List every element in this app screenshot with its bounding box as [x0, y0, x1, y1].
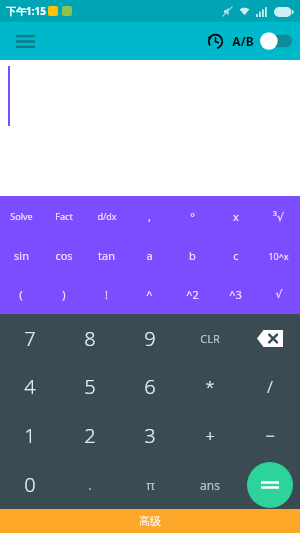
staticText: √: [275, 288, 283, 301]
staticText: tan: [98, 248, 115, 263]
button[interactable]: 1: [0, 411, 60, 460]
staticText: /: [267, 375, 273, 398]
button[interactable]: CLR: [180, 314, 240, 362]
staticText: A/B: [232, 33, 254, 49]
staticText: 3: [144, 422, 156, 449]
staticText: ^2: [186, 287, 199, 302]
staticText: 5: [84, 373, 96, 400]
button[interactable]: ans: [180, 460, 240, 509]
staticText: ,: [148, 209, 151, 224]
button[interactable]: a: [128, 236, 171, 275]
button[interactable]: Menu: [8, 24, 42, 58]
staticText: (: [19, 287, 23, 302]
button[interactable]: 7: [0, 314, 60, 362]
staticText: !: [105, 287, 108, 302]
button[interactable]: +: [180, 411, 240, 460]
staticText: b: [189, 248, 196, 263]
staticText: d/dx: [97, 210, 117, 222]
button[interactable]: −: [240, 411, 300, 460]
button[interactable]: tan: [85, 236, 128, 275]
button[interactable]: 高级: [0, 509, 300, 533]
staticText: −: [265, 424, 275, 447]
staticText: π: [146, 476, 155, 494]
staticText: 8: [84, 325, 96, 352]
button[interactable]: 0: [0, 460, 60, 509]
staticText: 1: [24, 422, 36, 449]
staticText: *: [205, 375, 215, 398]
button[interactable]: π: [120, 460, 180, 509]
button[interactable]: °: [171, 196, 214, 236]
button[interactable]: cos: [42, 236, 85, 275]
staticText: .: [88, 476, 92, 494]
button[interactable]: .: [60, 460, 120, 509]
button[interactable]: ^: [128, 275, 171, 314]
button[interactable]: ): [42, 275, 85, 314]
button[interactable]: 6: [120, 362, 180, 411]
staticText: sin: [14, 248, 29, 263]
button[interactable]: /: [240, 362, 300, 411]
staticText: 9: [144, 325, 156, 352]
staticText: a: [146, 248, 153, 263]
button[interactable]: x: [214, 196, 257, 236]
button[interactable]: History: [202, 28, 228, 54]
button[interactable]: !: [85, 275, 128, 314]
button[interactable]: 4: [0, 362, 60, 411]
staticText: ans: [200, 477, 220, 493]
staticText: ): [62, 287, 66, 302]
button[interactable]: c: [214, 236, 257, 275]
button[interactable]: ,: [128, 196, 171, 236]
staticText: 4: [24, 373, 36, 400]
staticText: x: [233, 209, 239, 224]
staticText: 6: [144, 373, 156, 400]
staticText: 10^x: [268, 250, 289, 262]
staticText: ^: [146, 287, 153, 302]
staticText: ³√: [273, 209, 284, 224]
staticText: ^3: [229, 287, 242, 302]
staticText: 下午1:15: [6, 4, 46, 18]
button[interactable]: ³√: [257, 196, 300, 236]
staticText: CLR: [200, 331, 220, 346]
button[interactable]: 5: [60, 362, 120, 411]
button[interactable]: Fact: [42, 196, 85, 236]
staticText: 7: [24, 325, 36, 352]
button[interactable]: 10^x: [257, 236, 300, 275]
button[interactable]: 2: [60, 411, 120, 460]
staticText: °: [190, 209, 195, 224]
staticText: 2: [84, 422, 96, 449]
button[interactable]: 3: [120, 411, 180, 460]
button[interactable]: Backspace: [240, 314, 300, 362]
button[interactable]: Equals: [240, 460, 300, 509]
button[interactable]: d/dx: [85, 196, 128, 236]
staticText: 0: [24, 471, 36, 498]
button[interactable]: Equals: [247, 462, 293, 508]
button[interactable]: Toggle A/B: [258, 31, 292, 51]
button[interactable]: b: [171, 236, 214, 275]
button[interactable]: 8: [60, 314, 120, 362]
button[interactable]: ^3: [214, 275, 257, 314]
button[interactable]: √: [257, 275, 300, 314]
button[interactable]: *: [180, 362, 240, 411]
button[interactable]: Solve: [0, 196, 42, 236]
staticText: cos: [55, 248, 73, 263]
staticText: 高级: [139, 514, 161, 528]
staticText: +: [205, 424, 215, 447]
button[interactable]: (: [0, 275, 42, 314]
button[interactable]: 9: [120, 314, 180, 362]
staticText: Solve: [10, 210, 33, 222]
button[interactable]: ^2: [171, 275, 214, 314]
button[interactable]: sin: [0, 236, 42, 275]
staticText: c: [233, 248, 239, 263]
staticText: Fact: [55, 210, 73, 222]
